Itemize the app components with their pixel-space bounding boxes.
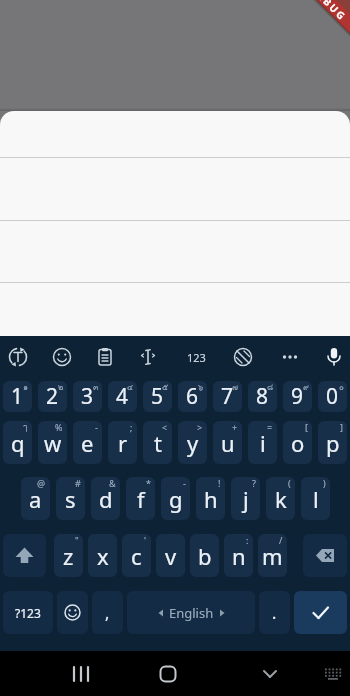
button[interactable] bbox=[223, 337, 263, 377]
button[interactable] bbox=[314, 337, 350, 377]
button[interactable] bbox=[3, 534, 46, 577]
button[interactable]: i bbox=[248, 421, 277, 464]
button[interactable]: 0 bbox=[318, 381, 347, 412]
staticText: g bbox=[169, 484, 183, 514]
staticText: j bbox=[243, 484, 249, 514]
button[interactable]: j bbox=[231, 477, 260, 520]
button[interactable]: f bbox=[126, 477, 155, 520]
button[interactable] bbox=[61, 654, 101, 694]
button[interactable]: e bbox=[73, 421, 102, 464]
button[interactable]: 3 bbox=[73, 381, 102, 412]
staticText: - bbox=[95, 421, 98, 433]
button[interactable]: t bbox=[143, 421, 172, 464]
button[interactable]: s bbox=[56, 477, 85, 520]
staticText: = bbox=[267, 421, 273, 433]
button[interactable]: g bbox=[161, 477, 190, 520]
button[interactable]: n bbox=[224, 534, 253, 577]
staticText: e bbox=[81, 428, 94, 458]
button[interactable]: . bbox=[259, 591, 290, 634]
button[interactable] bbox=[313, 654, 350, 694]
staticText: > bbox=[197, 421, 203, 433]
staticText: ๒ bbox=[58, 381, 64, 394]
button[interactable]: a bbox=[21, 477, 50, 520]
staticText: ( bbox=[288, 477, 291, 489]
button[interactable]: English bbox=[127, 591, 255, 634]
staticText: w bbox=[44, 428, 62, 458]
staticText: q bbox=[11, 428, 25, 458]
staticText: x bbox=[97, 541, 109, 571]
button[interactable] bbox=[128, 337, 168, 377]
button[interactable]: z bbox=[54, 534, 83, 577]
button[interactable]: 5 bbox=[143, 381, 172, 412]
staticText: 7 bbox=[221, 382, 234, 411]
button[interactable]: ?123 bbox=[3, 591, 53, 634]
button[interactable]: m bbox=[258, 534, 287, 577]
staticText: 123 bbox=[187, 350, 206, 365]
button[interactable]: v bbox=[156, 534, 185, 577]
button[interactable]: r bbox=[108, 421, 137, 464]
button[interactable] bbox=[42, 337, 82, 377]
staticText: i bbox=[260, 428, 266, 458]
button[interactable]: b bbox=[190, 534, 219, 577]
staticText: 3 bbox=[81, 382, 94, 411]
button[interactable]: x bbox=[88, 534, 117, 577]
button[interactable]: 2 bbox=[38, 381, 67, 412]
button[interactable]: q bbox=[3, 421, 32, 464]
button[interactable]: w bbox=[38, 421, 67, 464]
staticText: n bbox=[232, 541, 246, 571]
staticText: z bbox=[63, 541, 74, 571]
button[interactable] bbox=[0, 337, 38, 377]
staticText: l bbox=[313, 484, 319, 514]
button[interactable]: l bbox=[301, 477, 330, 520]
staticText: v bbox=[165, 541, 177, 571]
staticText: ; bbox=[130, 421, 133, 433]
button[interactable]: , bbox=[92, 591, 123, 634]
button[interactable] bbox=[57, 591, 88, 634]
staticText: ๑ bbox=[23, 381, 29, 394]
button[interactable]: 7 bbox=[213, 381, 242, 412]
staticText: " bbox=[75, 534, 79, 546]
staticText: < bbox=[162, 421, 168, 433]
staticText: 0 bbox=[326, 382, 339, 411]
staticText: 8 bbox=[256, 382, 269, 411]
staticText: DEBUG bbox=[308, 0, 350, 24]
button[interactable]: p bbox=[318, 421, 347, 464]
staticText: ' bbox=[144, 534, 147, 546]
staticText: u bbox=[221, 428, 235, 458]
button[interactable]: 4 bbox=[108, 381, 137, 412]
button[interactable]: 123 bbox=[176, 337, 216, 377]
staticText: 2 bbox=[46, 382, 59, 411]
button[interactable]: 6 bbox=[178, 381, 207, 412]
staticText: 4 bbox=[116, 382, 129, 411]
button[interactable]: 8 bbox=[248, 381, 277, 412]
staticText: ๓ bbox=[93, 381, 99, 394]
button[interactable]: u bbox=[213, 421, 242, 464]
button[interactable]: d bbox=[91, 477, 120, 520]
staticText: 9 bbox=[291, 382, 304, 411]
button[interactable] bbox=[85, 337, 125, 377]
button[interactable]: h bbox=[196, 477, 225, 520]
button[interactable] bbox=[250, 654, 290, 694]
button[interactable] bbox=[270, 337, 310, 377]
button[interactable]: 9 bbox=[283, 381, 312, 412]
staticText: ?123 bbox=[15, 605, 41, 621]
button[interactable]: o bbox=[283, 421, 312, 464]
staticText: ] bbox=[340, 421, 343, 433]
button[interactable]: y bbox=[178, 421, 207, 464]
button[interactable] bbox=[303, 534, 347, 577]
staticText: + bbox=[232, 421, 238, 433]
button[interactable]: k bbox=[266, 477, 295, 520]
button[interactable]: c bbox=[122, 534, 151, 577]
button[interactable]: 1 bbox=[3, 381, 32, 412]
button[interactable] bbox=[148, 654, 188, 694]
button[interactable] bbox=[0, 111, 350, 157]
button[interactable] bbox=[294, 591, 347, 634]
staticText: y bbox=[187, 428, 199, 458]
staticText: ๗ bbox=[232, 381, 239, 394]
staticText: 1 bbox=[11, 382, 24, 411]
staticText: o bbox=[291, 428, 305, 458]
staticText: p bbox=[326, 428, 340, 458]
